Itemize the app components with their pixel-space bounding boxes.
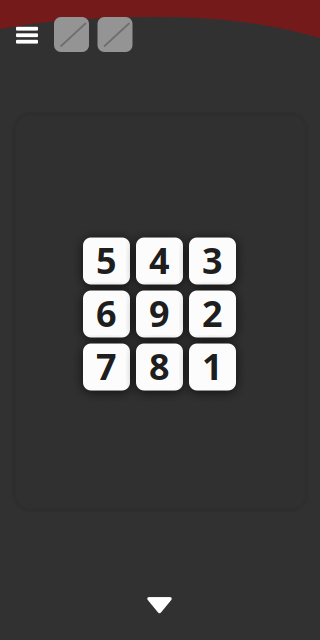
staticText: 7 xyxy=(96,342,117,390)
staticText: 6 xyxy=(96,289,117,337)
staticText: 4 xyxy=(149,236,170,284)
button[interactable]: Photo one xyxy=(54,17,89,52)
button[interactable]: Menu xyxy=(12,18,42,52)
staticText: 9 xyxy=(149,289,170,337)
staticText: 5 xyxy=(96,236,117,284)
staticText: 2 xyxy=(202,289,223,337)
staticText: 3 xyxy=(202,236,223,284)
staticText: 1 xyxy=(202,342,223,390)
staticText: 8 xyxy=(149,342,170,390)
button[interactable]: Scroll down xyxy=(146,597,172,614)
button[interactable]: Photo two xyxy=(97,17,132,52)
